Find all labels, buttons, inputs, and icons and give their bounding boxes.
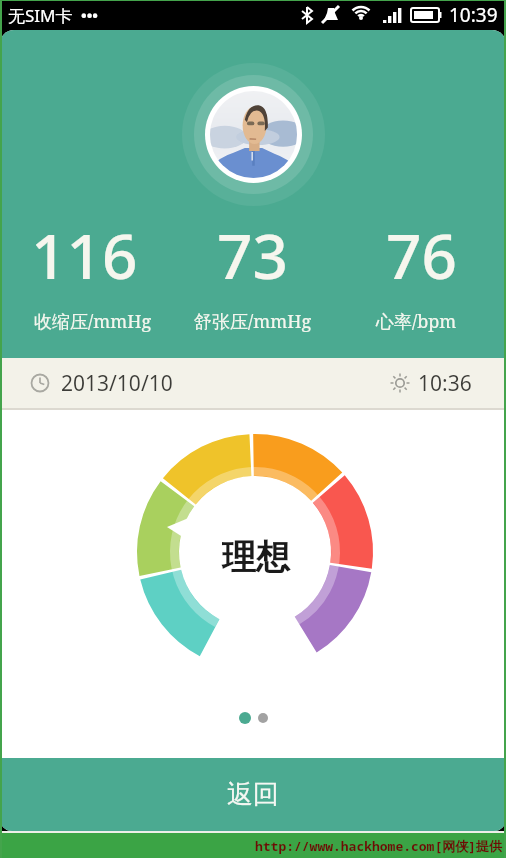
staticText: 心率/bpm xyxy=(376,309,457,334)
staticText: 2013/10/10 xyxy=(61,369,173,398)
staticText: 返回 xyxy=(227,778,279,811)
staticText: 10:36 xyxy=(418,369,472,398)
staticText: 理想 xyxy=(222,536,290,579)
staticText: 10:39 xyxy=(449,2,498,28)
staticText: 无SIM卡 xyxy=(8,4,73,27)
staticText: 73 xyxy=(217,213,288,297)
button[interactable]: 返回 xyxy=(0,758,506,831)
staticText: http://www.hackhome.com[网侠]提供 xyxy=(255,837,503,855)
staticText: 舒张压/mmHg xyxy=(194,309,312,334)
staticText: 116 xyxy=(31,213,138,297)
staticText: 收缩压/mmHg xyxy=(34,309,152,334)
staticText: ••• xyxy=(81,5,98,25)
staticText: 76 xyxy=(386,213,457,297)
